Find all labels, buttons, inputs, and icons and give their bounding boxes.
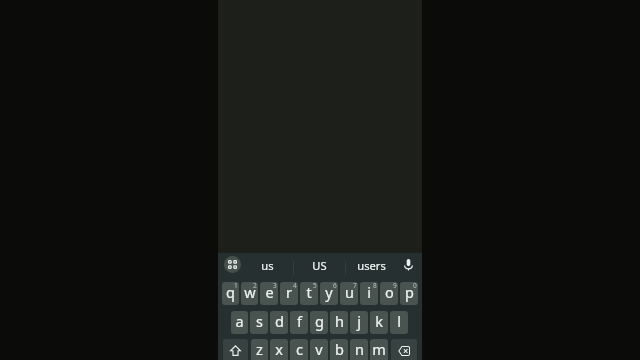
staticText: s <box>256 311 263 331</box>
staticText: x <box>275 339 283 359</box>
button[interactable]: h <box>330 311 348 334</box>
staticText: r <box>286 282 292 302</box>
staticText: m <box>372 339 386 359</box>
button[interactable]: e <box>260 282 278 305</box>
staticText: us <box>261 258 274 273</box>
button[interactable]: l <box>390 311 408 334</box>
button[interactable]: d <box>270 311 288 334</box>
button[interactable]: Shift <box>223 339 248 360</box>
staticText: 0 <box>413 282 417 290</box>
button[interactable]: w <box>241 282 258 305</box>
button[interactable]: a <box>231 311 248 334</box>
staticText: p <box>405 282 414 302</box>
button[interactable]: s <box>250 311 268 334</box>
button[interactable]: Voice input <box>398 254 418 274</box>
staticText: w <box>244 282 256 302</box>
button[interactable]: us <box>241 251 293 280</box>
button[interactable]: n <box>350 339 368 360</box>
button[interactable]: x <box>270 339 288 360</box>
staticText: 1 <box>234 282 238 290</box>
button[interactable]: b <box>330 339 348 360</box>
staticText: y <box>325 282 333 302</box>
staticText: 2 <box>253 282 257 290</box>
button[interactable]: m <box>370 339 388 360</box>
button[interactable]: US <box>293 251 345 280</box>
button[interactable]: t <box>300 282 318 305</box>
staticText: f <box>297 311 302 331</box>
button[interactable]: q <box>222 282 239 305</box>
staticText: k <box>375 311 383 331</box>
button[interactable]: p <box>400 282 418 305</box>
button[interactable]: f <box>290 311 308 334</box>
staticText: 4 <box>293 282 297 290</box>
button[interactable]: users <box>345 251 397 280</box>
button[interactable]: y <box>320 282 338 305</box>
staticText: 7 <box>353 282 357 290</box>
staticText: h <box>335 311 344 331</box>
staticText: l <box>397 311 401 331</box>
staticText: d <box>275 311 284 331</box>
button[interactable]: c <box>290 339 308 360</box>
staticText: t <box>306 282 312 302</box>
staticText: o <box>385 282 394 302</box>
staticText: users <box>357 258 386 273</box>
button[interactable]: Backspace <box>391 339 417 360</box>
button[interactable]: v <box>310 339 328 360</box>
button[interactable]: u <box>340 282 358 305</box>
staticText: i <box>367 282 371 302</box>
staticText: n <box>355 339 364 359</box>
button[interactable]: r <box>280 282 298 305</box>
staticText: b <box>335 339 344 359</box>
staticText: US <box>312 258 327 273</box>
button[interactable]: g <box>310 311 328 334</box>
button[interactable]: z <box>251 339 268 360</box>
button[interactable]: o <box>380 282 398 305</box>
staticText: g <box>315 311 324 331</box>
staticText: 5 <box>313 282 317 290</box>
staticText: c <box>296 339 303 359</box>
staticText: 3 <box>273 282 277 290</box>
button[interactable]: Switch keyboard <box>224 256 241 273</box>
staticText: v <box>315 339 323 359</box>
button[interactable]: j <box>350 311 368 334</box>
staticText: e <box>265 282 274 302</box>
staticText: 9 <box>393 282 397 290</box>
staticText: 8 <box>373 282 377 290</box>
staticText: a <box>235 311 244 331</box>
button[interactable]: i <box>360 282 378 305</box>
staticText: z <box>256 339 263 359</box>
button[interactable]: k <box>370 311 388 334</box>
staticText: q <box>226 282 235 302</box>
staticText: u <box>345 282 354 302</box>
staticText: j <box>357 311 361 331</box>
staticText: 6 <box>333 282 337 290</box>
